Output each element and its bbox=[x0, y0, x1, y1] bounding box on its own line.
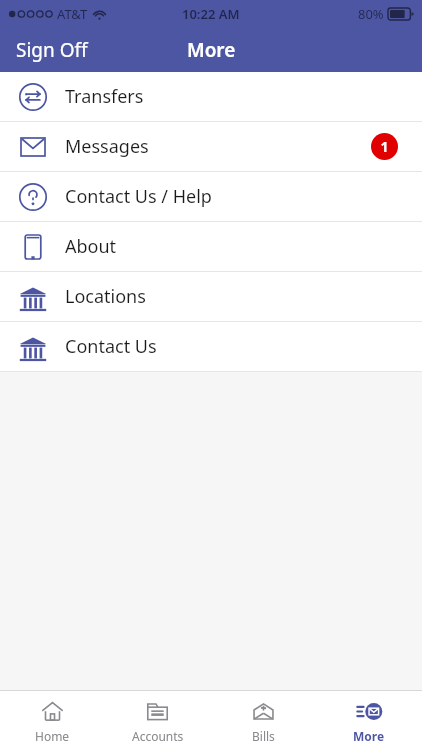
staticText: More bbox=[187, 37, 236, 63]
button[interactable]: Messages bbox=[0, 122, 422, 171]
button[interactable]: Sign Off bbox=[0, 28, 104, 72]
staticText: Sign Off bbox=[16, 37, 88, 63]
button[interactable]: Home bbox=[0, 691, 105, 750]
button[interactable]: Accounts bbox=[105, 691, 210, 750]
staticText: AT&T bbox=[57, 5, 88, 23]
staticText: About bbox=[65, 234, 117, 259]
button[interactable]: Contact Us bbox=[0, 322, 422, 371]
staticText: Home bbox=[35, 728, 70, 744]
staticText: Accounts bbox=[132, 728, 184, 744]
button[interactable]: Bills bbox=[210, 691, 316, 750]
staticText: Locations bbox=[65, 284, 146, 309]
staticText: More bbox=[353, 728, 385, 744]
staticText: 80% bbox=[358, 5, 384, 23]
staticText: Bills bbox=[252, 728, 275, 744]
staticText: Contact Us bbox=[65, 334, 157, 359]
button[interactable]: Locations bbox=[0, 272, 422, 321]
staticText: 10:22 AM bbox=[182, 5, 240, 23]
staticText: 1 bbox=[380, 137, 389, 156]
button[interactable]: Contact Us / Help bbox=[0, 172, 422, 221]
button[interactable]: More bbox=[316, 691, 422, 750]
staticText: Messages bbox=[65, 134, 149, 159]
button[interactable]: About bbox=[0, 222, 422, 271]
staticText: Transfers bbox=[65, 84, 144, 109]
staticText: Contact Us / Help bbox=[65, 184, 212, 209]
button[interactable]: Transfers bbox=[0, 72, 422, 121]
